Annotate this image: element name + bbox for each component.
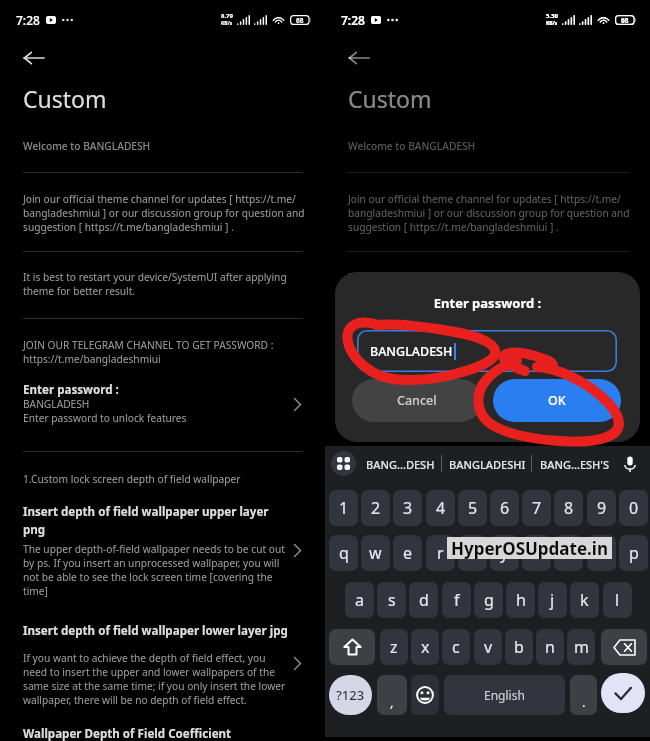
staticText: 68 <box>621 16 629 25</box>
button[interactable]: b <box>505 629 533 665</box>
button[interactable]: t <box>458 535 487 571</box>
staticText: 7:28 <box>16 12 40 28</box>
staticText: n <box>545 636 555 658</box>
button[interactable]: q <box>329 535 358 571</box>
button[interactable]: 2 <box>361 490 390 526</box>
button[interactable]: i <box>554 535 583 571</box>
staticText: s <box>388 589 396 611</box>
button[interactable]: n <box>536 629 564 665</box>
button[interactable]: d <box>409 582 438 618</box>
button[interactable]: 5 <box>458 490 487 526</box>
staticText: 8.79 <box>221 12 233 20</box>
staticText: 7:28 <box>341 12 365 28</box>
button[interactable]: r <box>426 535 455 571</box>
button[interactable]: h <box>506 582 535 618</box>
button[interactable]: . <box>570 675 597 715</box>
button[interactable]: g <box>474 582 503 618</box>
button[interactable]: y <box>490 535 519 571</box>
button[interactable]: o <box>587 535 616 571</box>
button[interactable]: x <box>411 629 439 665</box>
staticText: The upper depth-of-field wallpaper needs… <box>348 542 610 598</box>
staticText: 5.30 <box>546 12 558 20</box>
staticText: 4 <box>436 497 446 519</box>
button[interactable]: Enter password : <box>325 376 650 444</box>
staticText: 9 <box>597 497 607 519</box>
staticText: Custom <box>23 83 107 114</box>
button[interactable]: Backspace <box>601 629 647 665</box>
button[interactable]: v <box>474 629 502 665</box>
button[interactable]: 0 <box>619 490 648 526</box>
staticText: Enter password to unlock features <box>348 411 512 425</box>
staticText: 5 <box>468 497 478 519</box>
staticText: Cancel <box>397 392 437 409</box>
button[interactable]: k <box>570 582 599 618</box>
button[interactable]: Emoji <box>411 675 439 715</box>
staticText: KB/s <box>221 20 233 27</box>
button[interactable]: 4 <box>426 490 455 526</box>
staticText: h <box>516 589 526 611</box>
staticText: Insert depth of field wallpaper upper la… <box>23 504 269 537</box>
staticText: Enter password to unlock features <box>23 411 187 425</box>
button[interactable]: BANG...ESH'S <box>533 448 615 480</box>
button[interactable]: English <box>444 675 565 715</box>
staticText: l <box>615 589 620 611</box>
staticText: 8 <box>564 497 574 519</box>
button[interactable]: Cancel <box>352 379 482 422</box>
staticText: BANGLADESHI <box>449 457 526 472</box>
button[interactable]: BANGLADESHI <box>443 448 531 480</box>
staticText: Enter password : <box>335 294 640 312</box>
button[interactable]: e <box>393 535 422 571</box>
staticText: 7 <box>532 497 542 519</box>
button[interactable]: OK <box>493 379 621 422</box>
staticText: BANG...ESH'S <box>540 457 609 472</box>
button[interactable]: , <box>377 675 407 715</box>
staticText: The upper depth-of-field wallpaper needs… <box>23 542 285 598</box>
button[interactable]: c <box>442 629 470 665</box>
button[interactable]: 9 <box>587 490 616 526</box>
button[interactable]: Insert depth of field wallpaper upper la… <box>325 500 650 610</box>
button[interactable]: w <box>361 535 390 571</box>
button[interactable]: Keyboard menu <box>331 451 356 476</box>
button[interactable]: m <box>567 629 595 665</box>
button[interactable]: Back <box>339 38 379 78</box>
button[interactable]: a <box>345 582 374 618</box>
button[interactable]: 6 <box>490 490 519 526</box>
staticText: e <box>403 542 413 564</box>
button[interactable]: 8 <box>554 490 583 526</box>
button[interactable]: Shift <box>329 629 375 665</box>
button[interactable]: p <box>619 535 648 571</box>
staticText: x <box>421 636 430 658</box>
button[interactable]: s <box>377 582 406 618</box>
button[interactable]: Insert depth of field wallpaper upper la… <box>0 500 325 610</box>
button[interactable]: Voice input <box>617 451 643 477</box>
staticText: t <box>470 542 476 564</box>
button[interactable]: Enter password : <box>0 376 325 444</box>
staticText: r <box>437 542 444 564</box>
button[interactable]: j <box>538 582 567 618</box>
staticText: g <box>484 589 494 611</box>
button[interactable]: Insert depth of field wallpaper lower la… <box>325 619 650 724</box>
button[interactable]: Back <box>14 38 54 78</box>
button[interactable]: 3 <box>393 490 422 526</box>
staticText: BANGLADESH <box>370 343 453 360</box>
staticText: Insert depth of field wallpaper lower la… <box>348 623 613 639</box>
staticText: v <box>484 636 493 658</box>
staticText: Welcome to BANGLADESH <box>348 139 476 153</box>
staticText: Insert depth of field wallpaper lower la… <box>23 623 288 639</box>
button[interactable]: z <box>380 629 408 665</box>
button[interactable]: Enter <box>601 673 645 713</box>
button[interactable]: BANG...DESH <box>359 448 441 480</box>
button[interactable]: l <box>603 582 632 618</box>
button[interactable]: Insert depth of field wallpaper lower la… <box>0 619 325 724</box>
button[interactable]: ?123 <box>329 675 372 715</box>
staticText: y <box>500 542 509 564</box>
button[interactable]: f <box>442 582 471 618</box>
button[interactable]: 1 <box>329 490 358 526</box>
button[interactable]: 7 <box>522 490 551 526</box>
staticText: q <box>339 542 349 564</box>
staticText: It is best to restart your device/System… <box>348 270 640 298</box>
staticText: ?123 <box>336 686 365 704</box>
staticText: p <box>629 542 639 564</box>
staticText: d <box>419 589 429 611</box>
button[interactable]: u <box>522 535 551 571</box>
